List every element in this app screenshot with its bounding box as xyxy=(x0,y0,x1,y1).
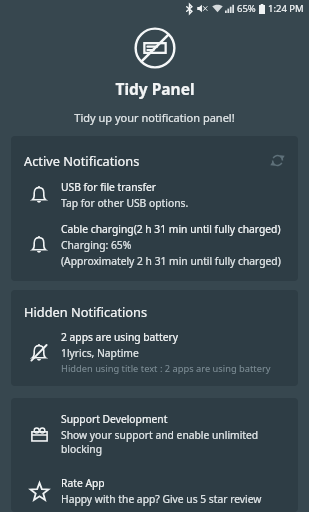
button[interactable]: USB for file transfer xyxy=(11,180,298,210)
button[interactable]: Cable charging(2 h 31 min until fully ch… xyxy=(11,222,298,268)
staticText: Hidden using title text : 2 apps are usi… xyxy=(61,362,271,375)
staticText: (Approximately 2 h 31 min until fully ch… xyxy=(61,254,281,268)
staticText: 1:24 PM xyxy=(268,2,304,15)
staticText: Tap for other USB options. xyxy=(61,196,189,210)
other: Tidy Panel logo xyxy=(133,26,177,70)
staticText: 2 apps are using battery xyxy=(61,330,179,344)
staticText: Show your support and enable unlimited b… xyxy=(61,428,290,456)
staticText: Cable charging(2 h 31 min until fully ch… xyxy=(61,222,281,236)
staticText: USB for file transfer xyxy=(61,180,157,194)
button[interactable]: 2 apps are using battery xyxy=(11,330,298,375)
staticText: Tidy up your notification panel! xyxy=(74,110,235,125)
staticText: 1lyrics, Naptime xyxy=(61,346,139,360)
button[interactable]: Refresh xyxy=(265,148,289,172)
staticText: Happy with the app? Give us 5 star revie… xyxy=(61,492,262,506)
staticText: Charging: 65% xyxy=(61,238,132,252)
staticText: Tidy Panel xyxy=(115,78,195,99)
staticText: Rate App xyxy=(61,476,105,490)
staticText: 65% xyxy=(237,2,256,15)
staticText: Support Development xyxy=(61,412,168,426)
button[interactable]: Support Development xyxy=(11,408,298,460)
button[interactable]: Rate App xyxy=(11,472,298,510)
staticText: Active Notifications xyxy=(24,152,265,169)
staticText: Hidden Notifications xyxy=(24,303,148,320)
